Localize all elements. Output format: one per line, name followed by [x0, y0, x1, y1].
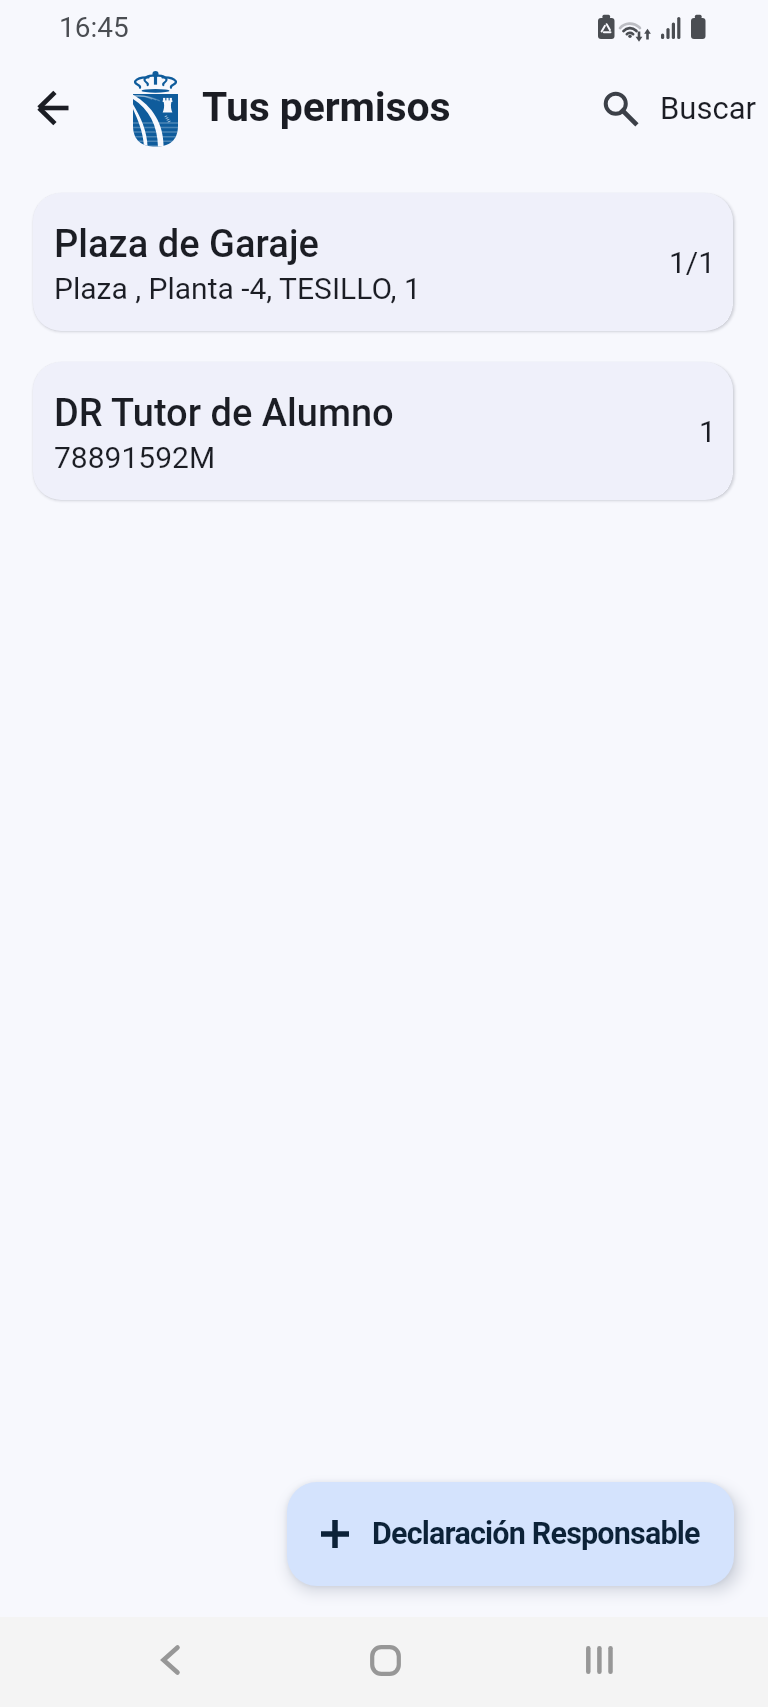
button[interactable]: DR Tutor de Alumno: [33, 362, 733, 500]
button[interactable]: Back: [135, 1630, 205, 1690]
staticText: 78891592M: [54, 440, 216, 475]
button[interactable]: Plaza de Garaje: [33, 193, 733, 331]
button[interactable]: Back: [27, 82, 79, 134]
staticText: 1/1: [669, 245, 716, 280]
staticText: Buscar: [660, 90, 756, 126]
button[interactable]: Buscar: [592, 80, 756, 136]
staticText: Plaza de Garaje: [54, 222, 319, 267]
button[interactable]: Home: [350, 1630, 420, 1690]
staticText: 16:45: [59, 11, 129, 44]
staticText: Tus permisos: [202, 83, 451, 131]
staticText: 1: [699, 414, 716, 449]
staticText: Declaración Responsable: [372, 1516, 700, 1552]
button[interactable]: Recent apps: [565, 1630, 635, 1690]
staticText: Plaza , Planta -4, TESILLO, 1: [54, 271, 421, 306]
staticText: DR Tutor de Alumno: [54, 391, 394, 436]
button[interactable]: Declaración Responsable: [287, 1482, 734, 1586]
